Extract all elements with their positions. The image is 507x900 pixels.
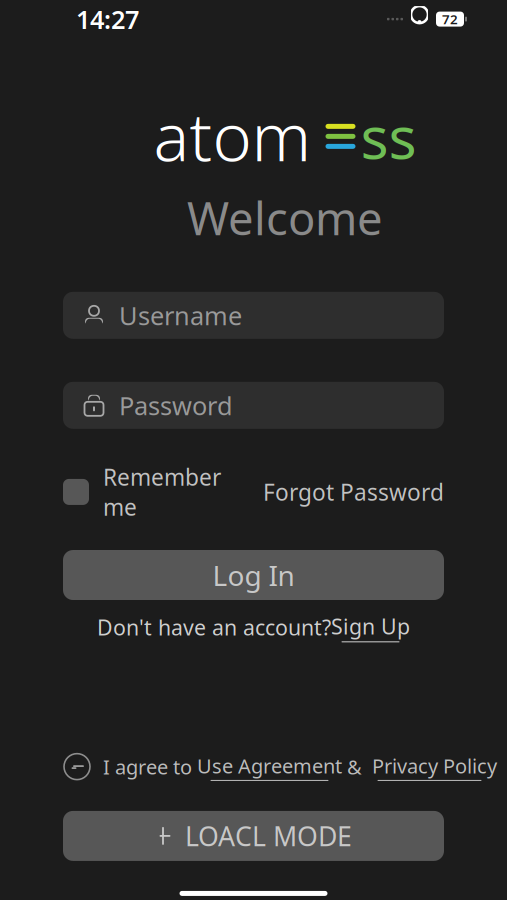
staticText: Log In <box>212 556 294 594</box>
button[interactable]: Sign Up <box>331 612 410 642</box>
button[interactable]: Agree to terms <box>63 753 91 781</box>
button[interactable]: Privacy Policy <box>362 752 497 781</box>
staticText: atom <box>153 91 311 180</box>
staticText: 14:27 <box>76 2 139 36</box>
button[interactable]: Remember me <box>63 462 221 522</box>
staticText: Forgot Password <box>263 477 444 507</box>
staticText: Remember me <box>103 462 221 522</box>
button[interactable]: LOACL MODE <box>63 811 444 861</box>
button[interactable]: Forgot Password <box>263 477 444 507</box>
staticText: Welcome <box>187 188 383 248</box>
staticText: Sign Up <box>331 612 410 640</box>
staticText: ss <box>360 97 416 175</box>
staticText: LOACL MODE <box>185 818 352 854</box>
staticText: Password <box>119 388 233 422</box>
button[interactable]: Use Agreement <box>192 752 347 781</box>
staticText: Privacy Policy <box>362 752 497 779</box>
staticText: 72 <box>442 10 458 28</box>
button[interactable]: Log In <box>63 550 444 600</box>
staticText: I agree to <box>103 753 192 780</box>
staticText: & <box>347 753 362 780</box>
staticText: Don't have an account? <box>97 613 331 641</box>
staticText: Use Agreement <box>192 752 347 779</box>
staticText: Username <box>119 298 242 332</box>
